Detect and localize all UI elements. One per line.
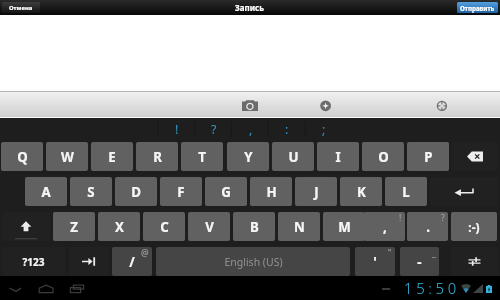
button[interactable]: V — [188, 212, 230, 241]
button[interactable]: Q — [1, 142, 43, 171]
staticText: ! — [175, 121, 179, 138]
button[interactable]: . — [407, 212, 448, 241]
button[interactable]: Z — [53, 212, 95, 241]
staticText: X — [115, 218, 124, 236]
button[interactable]: ! — [158, 118, 195, 141]
button[interactable]: B — [233, 212, 275, 241]
staticText: Z — [70, 218, 78, 236]
staticText: E — [108, 148, 116, 166]
staticText: U — [288, 148, 299, 166]
staticText: P — [424, 148, 433, 166]
staticText: A — [41, 183, 51, 201]
staticText: K — [357, 183, 366, 201]
button[interactable]: Tab — [69, 247, 109, 276]
button[interactable]: / — [112, 247, 152, 276]
button[interactable]: : — [268, 118, 305, 141]
button[interactable]: F — [160, 177, 202, 206]
button[interactable]: , — [232, 118, 269, 141]
button[interactable]: X — [98, 212, 140, 241]
button[interactable]: ' — [355, 247, 395, 276]
button[interactable]: G — [205, 177, 247, 206]
button[interactable]: P — [407, 142, 449, 171]
staticText: J — [314, 183, 319, 201]
staticText: , — [249, 121, 253, 138]
staticText: ! — [399, 212, 402, 224]
staticText: ' — [373, 253, 377, 271]
button[interactable]: N — [278, 212, 320, 241]
staticText: ? — [211, 121, 217, 138]
staticText: N — [294, 218, 305, 236]
button[interactable]: Backspace — [452, 142, 498, 171]
button[interactable]: A — [25, 177, 67, 206]
staticText: _ — [432, 247, 436, 259]
button[interactable]: O — [362, 142, 404, 171]
staticText: D — [131, 183, 141, 201]
button[interactable]: L — [385, 177, 427, 206]
staticText: R — [153, 148, 162, 166]
staticText: English (US) — [224, 255, 283, 269]
staticText: G — [221, 183, 231, 201]
button[interactable]: E — [91, 142, 133, 171]
staticText: C — [160, 218, 169, 236]
button[interactable]: English (US) — [156, 247, 350, 276]
staticText: Запись — [235, 2, 265, 13]
button[interactable]: Add — [316, 95, 336, 113]
button[interactable]: R — [136, 142, 178, 171]
button[interactable]: ?123 — [2, 247, 65, 276]
button[interactable]: H — [250, 177, 292, 206]
staticText: @ — [141, 247, 149, 259]
staticText: - — [417, 253, 422, 271]
button[interactable]: Camera — [240, 95, 260, 113]
button[interactable]: S — [70, 177, 112, 206]
button[interactable]: Home — [36, 281, 56, 293]
staticText: , — [383, 218, 387, 236]
staticText: / — [129, 253, 135, 271]
staticText: Y — [244, 148, 253, 166]
staticText: Отмена — [9, 4, 33, 12]
button[interactable]: T — [181, 142, 223, 171]
staticText: ; — [322, 121, 326, 138]
button[interactable]: Отправить — [457, 2, 498, 13]
staticText: T — [198, 148, 206, 166]
button[interactable]: ; — [305, 118, 342, 141]
staticText: H — [266, 183, 277, 201]
button[interactable]: Enter — [430, 177, 498, 206]
staticText: :-) — [468, 219, 480, 235]
button[interactable]: Отмена — [2, 2, 40, 13]
button[interactable]: C — [143, 212, 185, 241]
button[interactable]: U — [272, 142, 314, 171]
button[interactable]: I — [317, 142, 359, 171]
button[interactable]: W — [46, 142, 88, 171]
button[interactable]: Shift — [2, 212, 50, 241]
button[interactable]: D — [115, 177, 157, 206]
staticText: Q — [17, 148, 28, 166]
staticText: . — [426, 218, 430, 236]
button[interactable]: Recents — [67, 281, 87, 293]
staticText: B — [250, 218, 259, 236]
button[interactable]: Back — [6, 281, 26, 293]
staticText: V — [205, 218, 214, 236]
staticText: W — [61, 148, 74, 166]
button[interactable]: ? — [195, 118, 232, 141]
staticText: M — [338, 218, 351, 236]
button[interactable]: , — [364, 212, 405, 241]
staticText: Отправить — [460, 4, 495, 12]
staticText: S — [87, 183, 95, 201]
staticText: ?123 — [22, 255, 45, 269]
button[interactable]: M — [323, 212, 365, 241]
button[interactable]: Location — [432, 95, 452, 113]
button[interactable]: Y — [227, 142, 269, 171]
staticText: L — [402, 183, 410, 201]
staticText: F — [177, 183, 185, 201]
staticText: I — [335, 148, 341, 166]
staticText: " — [388, 247, 392, 259]
staticText: ? — [441, 212, 445, 224]
staticText: O — [378, 148, 389, 166]
staticText: : — [285, 121, 289, 138]
button[interactable]: K — [340, 177, 382, 206]
button[interactable]: J — [295, 177, 337, 206]
staticText: 15:50 — [404, 278, 460, 298]
button[interactable]: - — [400, 247, 439, 276]
button[interactable]: :-) — [451, 212, 497, 241]
button[interactable]: Settings — [451, 247, 498, 276]
